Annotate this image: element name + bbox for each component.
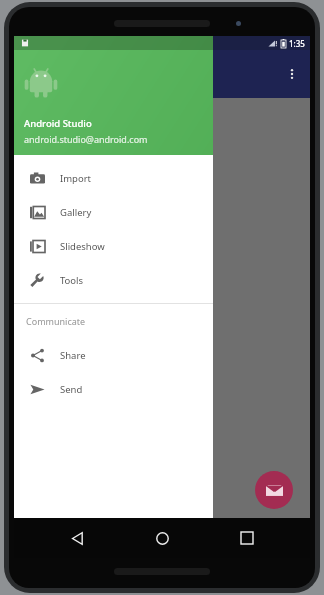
- button[interactable]: Send: [14, 372, 213, 406]
- button[interactable]: Slideshow: [14, 229, 213, 263]
- button[interactable]: Share: [14, 338, 213, 372]
- staticText: Slideshow: [60, 240, 105, 253]
- staticText: Gallery: [60, 206, 92, 219]
- staticText: Import: [60, 172, 92, 185]
- staticText: Communicate: [26, 315, 86, 327]
- button[interactable]: Recent apps: [225, 518, 269, 558]
- button[interactable]: Home: [140, 518, 184, 558]
- staticText: android.studio@android.com: [24, 133, 148, 145]
- button[interactable]: Gallery: [14, 195, 213, 229]
- button[interactable]: Back: [55, 518, 99, 558]
- button[interactable]: Send email: [255, 471, 293, 509]
- staticText: Tools: [60, 274, 84, 287]
- staticText: 1:35: [289, 38, 305, 49]
- staticText: Share: [60, 349, 86, 362]
- button[interactable]: More options: [274, 56, 310, 92]
- staticText: Send: [60, 383, 83, 396]
- staticText: Android Studio: [24, 117, 92, 130]
- button[interactable]: Tools: [14, 263, 213, 297]
- button[interactable]: Import: [14, 161, 213, 195]
